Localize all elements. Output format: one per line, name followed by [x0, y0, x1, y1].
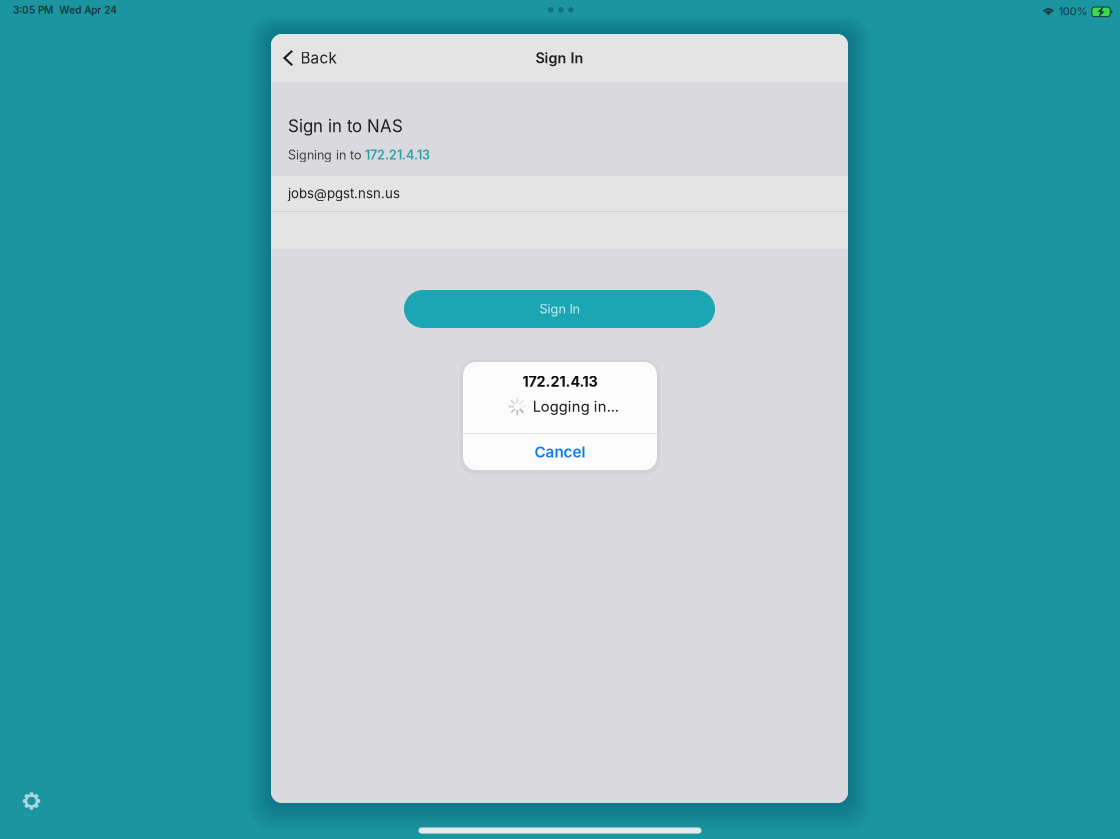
button[interactable]: Cancel	[463, 434, 657, 470]
staticText: 172.21.4.13	[522, 373, 597, 390]
button[interactable]: Sign In	[404, 290, 715, 328]
button[interactable]: Settings	[9, 779, 53, 823]
staticText: 100%	[1059, 5, 1088, 18]
staticText: 172.21.4.13	[365, 147, 430, 162]
staticText: jobs@pgst.nsn.us	[288, 186, 400, 201]
button[interactable]: Account	[271, 176, 848, 211]
staticText: Sign in to NAS	[288, 116, 403, 136]
staticText: Sign In	[535, 49, 583, 67]
staticText: Back	[301, 49, 337, 67]
staticText: Wed Apr 24	[59, 4, 117, 16]
staticText: Signing in to	[288, 147, 365, 162]
staticText: Sign In	[539, 301, 579, 317]
staticText: 3:05 PM	[13, 4, 53, 16]
button[interactable]: Back	[271, 34, 349, 82]
staticText: Cancel	[534, 443, 585, 461]
staticText: Logging in...	[533, 398, 619, 415]
